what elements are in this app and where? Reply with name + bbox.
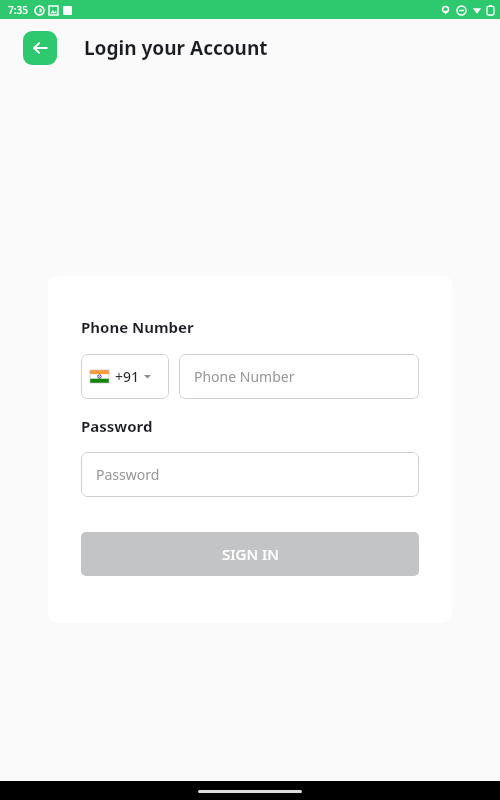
button[interactable]: Password: [81, 452, 419, 497]
staticText: Phone Number: [81, 317, 194, 337]
staticText: Password: [96, 465, 160, 484]
button[interactable]: +91: [81, 354, 169, 399]
staticText: SIGN IN: [222, 544, 279, 564]
staticText: Login your Account: [84, 35, 268, 61]
button[interactable]: Phone Number: [179, 354, 419, 399]
button[interactable]: Back: [23, 31, 57, 65]
staticText: Password: [81, 416, 153, 436]
staticText: Phone Number: [194, 367, 295, 386]
staticText: 7:35: [8, 3, 28, 17]
button[interactable]: SIGN IN: [81, 532, 419, 576]
staticText: +91: [115, 367, 140, 386]
